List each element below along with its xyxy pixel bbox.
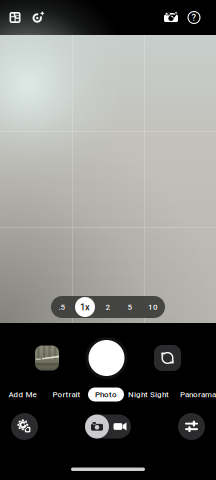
button[interactable]: Effects (27, 5, 49, 29)
button[interactable]: Portrait (51, 387, 82, 401)
staticText: 2 (105, 302, 110, 312)
staticText: Night Sight (128, 390, 169, 399)
button[interactable]: Camera settings (11, 413, 38, 440)
button[interactable]: More settings (178, 413, 205, 440)
button[interactable]: .5 (51, 296, 73, 318)
button[interactable]: Photo (88, 387, 124, 401)
button[interactable]: Panorama (179, 387, 216, 401)
staticText: Photo (95, 390, 117, 399)
staticText: ? (191, 12, 196, 23)
button[interactable]: Switch camera (154, 345, 181, 371)
button[interactable]: Add Me (8, 387, 37, 401)
button[interactable]: 2 (97, 296, 119, 318)
staticText: Panorama (180, 390, 216, 399)
button[interactable]: Video mode (109, 414, 131, 438)
button[interactable]: Camera options (160, 5, 182, 29)
staticText: Add Me (8, 390, 36, 399)
button[interactable]: Take photo (85, 337, 127, 379)
staticText: 10 (148, 302, 158, 312)
button[interactable]: Night Sight (128, 387, 169, 401)
button[interactable]: 10 (141, 296, 165, 318)
button[interactable]: Photo mode (85, 414, 109, 438)
staticText: .5 (58, 302, 65, 312)
button[interactable]: 5 (119, 296, 141, 318)
staticText: Portrait (52, 390, 80, 399)
button[interactable]: Google Lens (4, 5, 26, 29)
staticText: 1x (80, 301, 90, 312)
button[interactable]: 1x (73, 296, 97, 318)
button[interactable]: Gallery (35, 345, 59, 370)
button[interactable]: Help (183, 5, 205, 29)
staticText: 5 (127, 302, 132, 312)
